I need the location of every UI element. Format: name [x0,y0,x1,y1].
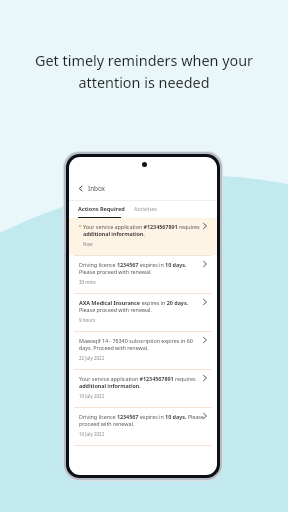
button[interactable]: AXA Medical Insurance expires in 20 days… [69,294,217,331]
button[interactable]: Mawaqif 14 - 76340 subscription expires … [69,332,217,369]
staticText: Driving licence 1234567 expires in 10 da… [79,413,207,428]
staticText: Activities [134,205,157,213]
button[interactable]: Activities [125,205,157,213]
button[interactable]: Your service application #1234567891 req… [69,370,217,407]
staticText: Now [83,241,93,247]
staticText: Inbox [88,184,105,193]
staticText: Get timely reminders when your attention… [0,51,288,92]
staticText: 10 July 2022 [79,431,105,437]
staticText: 30 mins [79,279,96,285]
button[interactable]: Driving licence 1234567 expires in 10 da… [69,408,217,445]
staticText: 9 hours [79,317,96,323]
staticText: Your service application #1234567891 req… [83,223,207,238]
button[interactable]: Actions Required [78,205,125,218]
staticText: Actions Required [78,205,125,213]
staticText: Your service application #1234567891 req… [79,375,207,390]
button[interactable]: Driving licence 1234567 expires in 10 da… [69,256,217,293]
staticText: 10 July 2022 [79,393,105,399]
staticText: AXA Medical Insurance expires in 20 days… [79,299,189,314]
staticText: Driving licence 1234567 expires in 10 da… [79,261,187,276]
button[interactable]: Your service application #1234567891 req… [69,218,217,255]
staticText: 22 July 2022 [79,355,105,361]
staticText: Mawaqif 14 - 76340 subscription expires … [79,337,207,352]
button[interactable]: Back [69,183,217,194]
other: Back [77,185,84,192]
